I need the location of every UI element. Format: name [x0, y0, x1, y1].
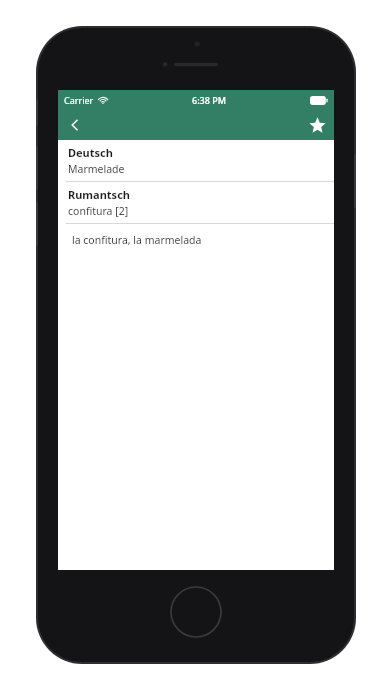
staticText: Carrier — [64, 94, 94, 106]
button[interactable]: Back — [58, 110, 92, 140]
button[interactable]: Rumantsch — [58, 182, 334, 223]
staticText: la confitura, la marmelada — [72, 233, 202, 247]
staticText: confitura [2] — [68, 204, 129, 218]
staticText: 6:38 PM — [192, 94, 226, 106]
button[interactable]: Deutsch — [58, 140, 334, 181]
button[interactable]: Favorite — [300, 110, 334, 140]
staticText: Deutsch — [68, 145, 113, 160]
staticText: Marmelade — [68, 162, 125, 176]
button[interactable]: la confitura, la marmelada — [58, 224, 334, 256]
staticText: Rumantsch — [68, 187, 130, 202]
